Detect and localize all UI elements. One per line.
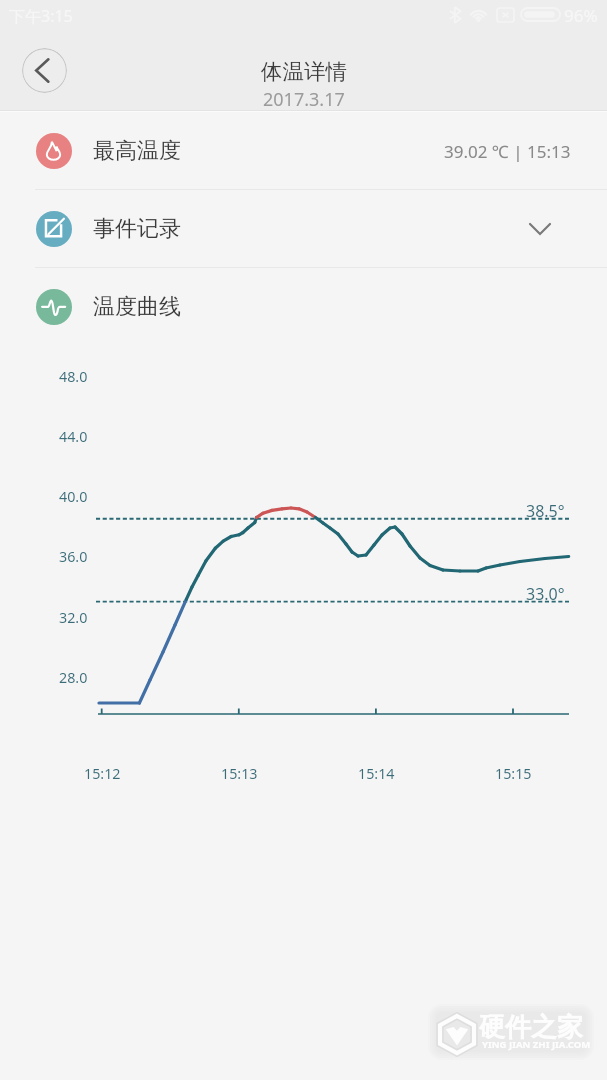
staticText: 39.02 ℃ | 15:13 [444,140,571,163]
staticText: 44.0 [59,427,88,446]
staticText: YING JIAN ZHI JIA.COM [482,1038,591,1051]
staticText: 最高温度 [93,137,181,165]
staticText: 15:13 [221,764,258,783]
staticText: 15:14 [358,764,395,783]
staticText: 15:12 [84,764,121,783]
staticText: 体温详情 [261,58,347,85]
staticText: 28.0 [59,668,88,687]
staticText: 2017.3.17 [263,87,345,112]
staticText: 33.0° [526,583,565,605]
staticText: 15:15 [495,764,532,783]
staticText: 48.0 [59,367,88,386]
staticText: 96% [564,4,598,27]
staticText: 38.5° [526,500,565,522]
button[interactable]: 温度曲线 [0,268,607,346]
staticText: 40.0 [59,487,88,506]
button[interactable]: Back [22,48,67,93]
staticText: 温度曲线 [93,293,181,321]
staticText: 32.0 [59,608,88,627]
staticText: 硬件之家 [479,1011,583,1044]
button[interactable]: 事件记录 [0,190,607,267]
staticText: 36.0 [59,547,88,566]
staticText: 事件记录 [93,215,181,243]
button[interactable]: 最高温度 [0,112,607,190]
